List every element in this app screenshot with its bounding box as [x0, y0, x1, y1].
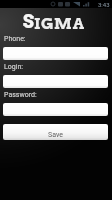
staticText: Phone: [4, 35, 26, 43]
staticText: IGMA [34, 14, 85, 33]
button[interactable] [3, 103, 108, 116]
staticText: Save [48, 131, 63, 139]
staticText: S [23, 11, 34, 33]
staticText: 3:43 [98, 1, 110, 8]
button[interactable] [3, 47, 108, 60]
button[interactable] [3, 75, 108, 88]
button[interactable]: Save [3, 124, 108, 140]
staticText: Password: [4, 91, 37, 99]
staticText: Login: [4, 63, 23, 71]
